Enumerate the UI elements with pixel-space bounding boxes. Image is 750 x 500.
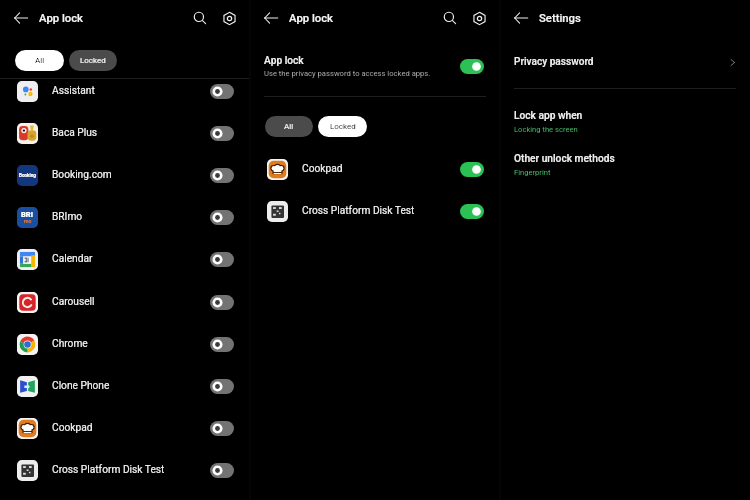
staticText: Use the privacy password to access locke… <box>264 69 431 78</box>
button[interactable]: App lock <box>250 48 500 84</box>
button[interactable]: Assistant <box>0 70 250 112</box>
button[interactable]: Booking <box>0 154 250 196</box>
staticText: Booking.com <box>52 169 210 181</box>
staticText: BRImo <box>52 211 210 223</box>
button[interactable]: Off <box>210 463 234 478</box>
button[interactable]: On <box>460 59 484 74</box>
button[interactable]: Off <box>210 379 234 394</box>
staticText: Privacy password <box>514 56 727 68</box>
staticText: Cookpad <box>302 163 460 175</box>
button[interactable]: Settings <box>468 7 490 29</box>
button[interactable]: Off <box>210 421 234 436</box>
button[interactable]: Baca Plus <box>0 112 250 154</box>
staticText: Booking <box>19 173 36 178</box>
button[interactable]: Other unlock methods <box>514 153 615 177</box>
staticText: Fingerprint <box>514 168 551 177</box>
button[interactable]: All <box>15 50 64 71</box>
staticText: App lock <box>264 55 304 67</box>
staticText: Locking the screen <box>514 125 578 134</box>
staticText: Clone Phone <box>52 380 210 392</box>
staticText: App lock <box>39 12 83 25</box>
button[interactable]: Locked <box>69 50 117 71</box>
staticText: Assistant <box>52 85 210 97</box>
staticText: Other unlock methods <box>514 153 615 165</box>
button[interactable]: Off <box>210 126 234 141</box>
button[interactable]: BRI <box>0 196 250 238</box>
button[interactable]: Lock app when <box>514 110 583 134</box>
staticText: Locked <box>330 122 356 131</box>
button[interactable]: Off <box>210 168 234 183</box>
button[interactable]: Cookpad <box>0 407 250 449</box>
staticText: Cross Platform Disk Test <box>52 464 210 476</box>
staticText: Cross Platform Disk Test <box>302 205 460 217</box>
button[interactable]: Off <box>210 295 234 310</box>
button[interactable]: Chrome <box>0 323 250 365</box>
button[interactable]: Calendar <box>0 238 250 280</box>
staticText: All <box>35 56 45 65</box>
button[interactable]: Off <box>210 210 234 225</box>
button[interactable]: Search <box>189 7 211 29</box>
button[interactable]: Cross Platform Disk Test <box>250 190 500 232</box>
button[interactable]: Carousell <box>0 281 250 323</box>
staticText: All <box>284 122 294 131</box>
staticText: Locked <box>80 56 106 65</box>
button[interactable]: On <box>460 162 484 177</box>
button[interactable]: Cross Platform Disk Test <box>0 449 250 491</box>
button[interactable]: Locked <box>318 116 367 137</box>
button[interactable]: Clone Phone <box>0 365 250 407</box>
button[interactable]: Off <box>210 252 234 267</box>
staticText: BRI <box>21 210 34 219</box>
button[interactable]: Back <box>260 7 282 29</box>
staticText: Baca Plus <box>52 127 210 139</box>
button[interactable]: All <box>265 116 313 137</box>
button[interactable]: Privacy password <box>500 46 750 78</box>
button[interactable]: On <box>460 204 484 219</box>
button[interactable]: Off <box>210 337 234 352</box>
staticText: Carousell <box>52 296 210 308</box>
staticText: App lock <box>289 12 333 25</box>
button[interactable]: Back <box>510 7 532 29</box>
staticText: Settings <box>539 12 581 25</box>
staticText: Lock app when <box>514 110 583 122</box>
staticText: Calendar <box>52 253 210 265</box>
button[interactable]: Cookpad <box>250 148 500 190</box>
button[interactable]: Off <box>210 84 234 99</box>
button[interactable]: Search <box>439 7 461 29</box>
staticText: Chrome <box>52 338 210 350</box>
staticText: mo <box>24 218 32 224</box>
button[interactable]: Settings <box>218 7 240 29</box>
button[interactable]: Back <box>10 7 32 29</box>
staticText: Cookpad <box>52 422 210 434</box>
